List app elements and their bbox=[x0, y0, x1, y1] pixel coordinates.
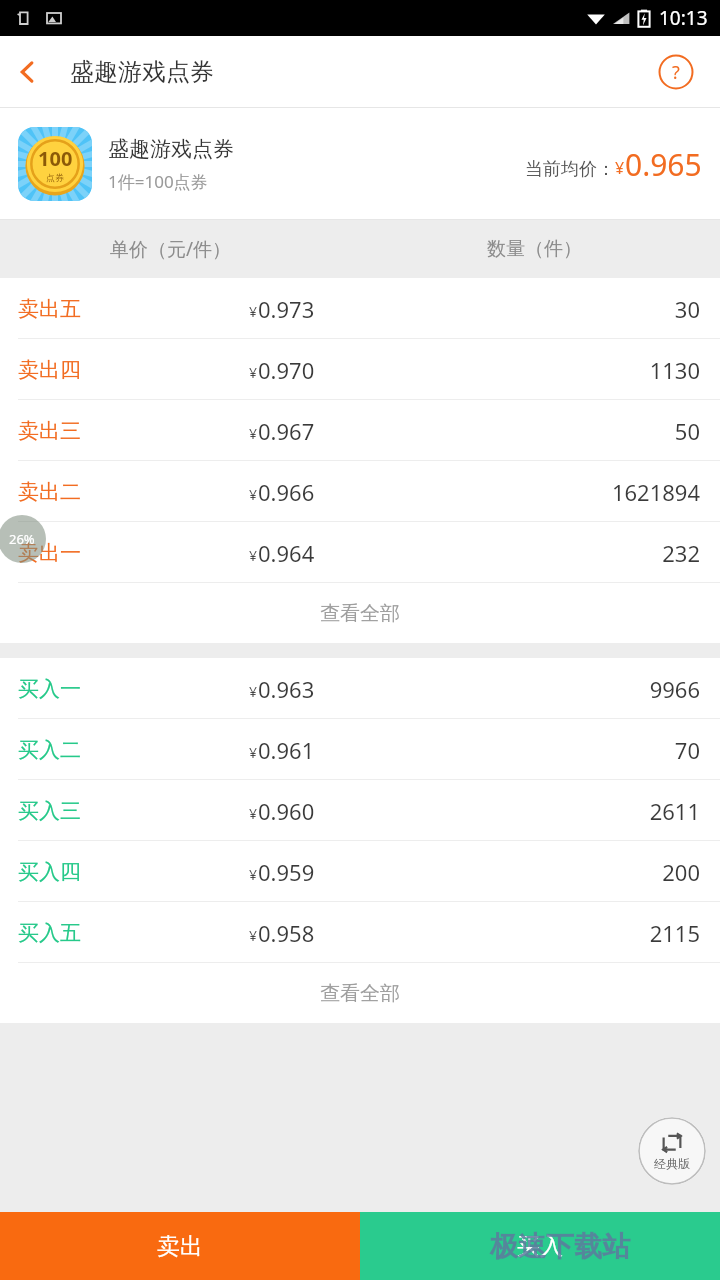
staticText: 200 bbox=[662, 857, 700, 887]
staticText: 经典版 bbox=[654, 1156, 690, 1171]
staticText: 盛趣游戏点券 bbox=[70, 57, 214, 87]
staticText: ¥ bbox=[249, 546, 258, 565]
button[interactable]: 卖出五 bbox=[0, 278, 720, 339]
staticText: 0.967 bbox=[258, 416, 315, 446]
staticText: 70 bbox=[674, 735, 700, 765]
staticText: 买入四 bbox=[18, 859, 81, 885]
staticText: 10:13 bbox=[659, 5, 708, 31]
staticText: 1621894 bbox=[611, 477, 700, 507]
staticText: 盛趣游戏点券 bbox=[108, 136, 234, 162]
button[interactable]: 卖出一 bbox=[0, 522, 720, 583]
staticText: 卖出 bbox=[157, 1232, 203, 1261]
button[interactable]: 买入三 bbox=[0, 780, 720, 841]
staticText: 查看全部 bbox=[320, 601, 400, 626]
staticText: 26% bbox=[9, 530, 35, 548]
staticText: 卖出二 bbox=[18, 479, 81, 505]
staticText: ? bbox=[672, 60, 680, 85]
staticText: 买入一 bbox=[18, 676, 81, 702]
staticText: ¥ bbox=[249, 804, 258, 823]
staticText: 极速下载站 bbox=[490, 1229, 630, 1264]
staticText: ¥ bbox=[249, 424, 258, 443]
staticText: 0.966 bbox=[258, 477, 315, 507]
staticText: 0.961 bbox=[258, 735, 315, 765]
staticText: 数量（件） bbox=[487, 237, 582, 261]
staticText: ¥ bbox=[249, 302, 258, 321]
staticText: 查看全部 bbox=[320, 981, 400, 1006]
staticText: ¥ bbox=[249, 926, 258, 945]
staticText: 卖出一 bbox=[18, 540, 81, 566]
button[interactable]: 卖出 bbox=[0, 1212, 360, 1280]
staticText: 9966 bbox=[649, 674, 700, 704]
staticText: 2115 bbox=[649, 918, 700, 948]
staticText: 0.960 bbox=[258, 796, 315, 826]
staticText: 卖出三 bbox=[18, 418, 81, 444]
staticText: 0.963 bbox=[258, 674, 315, 704]
staticText: ¥ bbox=[249, 485, 258, 504]
staticText: 50 bbox=[674, 416, 700, 446]
button[interactable]: 帮助 bbox=[654, 50, 698, 94]
staticText: 0.958 bbox=[258, 918, 315, 948]
button[interactable]: 买入一 bbox=[0, 658, 720, 719]
button[interactable]: 100 bbox=[0, 108, 720, 220]
staticText: 232 bbox=[662, 538, 700, 568]
staticText: 卖出五 bbox=[18, 296, 81, 322]
staticText: 单价（元/件） bbox=[110, 236, 232, 262]
button[interactable]: 卖出三 bbox=[0, 400, 720, 461]
staticText: 100 bbox=[38, 145, 73, 172]
staticText: 1130 bbox=[649, 355, 700, 385]
staticText: 0.965 bbox=[625, 144, 702, 185]
staticText: 卖出四 bbox=[18, 357, 81, 383]
button[interactable]: 卖出四 bbox=[0, 339, 720, 400]
button[interactable]: 切换经典版 bbox=[638, 1117, 706, 1185]
staticText: ¥ bbox=[249, 363, 258, 382]
button[interactable]: 返回 bbox=[0, 44, 56, 100]
button[interactable]: 卖出二 bbox=[0, 461, 720, 522]
staticText: ¥ bbox=[249, 743, 258, 762]
button[interactable]: 买入二 bbox=[0, 719, 720, 780]
staticText: 0.970 bbox=[258, 355, 315, 385]
button[interactable]: 查看全部 bbox=[0, 963, 720, 1023]
staticText: 买入五 bbox=[18, 920, 81, 946]
staticText: 点券 bbox=[46, 172, 64, 183]
staticText: 当前均价： bbox=[525, 158, 615, 181]
staticText: 买入三 bbox=[18, 798, 81, 824]
staticText: 买入二 bbox=[18, 737, 81, 763]
button[interactable]: 买入 bbox=[360, 1212, 720, 1280]
staticText: ¥ bbox=[249, 865, 258, 884]
staticText: 买入 bbox=[517, 1232, 563, 1261]
staticText: 0.964 bbox=[258, 538, 315, 568]
staticText: ¥ bbox=[249, 682, 258, 701]
staticText: 0.973 bbox=[258, 294, 315, 324]
staticText: 1件=100点券 bbox=[108, 170, 208, 193]
button[interactable]: 买入五 bbox=[0, 902, 720, 963]
button[interactable]: 买入四 bbox=[0, 841, 720, 902]
button[interactable]: 查看全部 bbox=[0, 583, 720, 643]
staticText: 0.959 bbox=[258, 857, 315, 887]
staticText: ¥ bbox=[615, 157, 625, 179]
staticText: 2611 bbox=[649, 796, 700, 826]
staticText: 30 bbox=[674, 294, 700, 324]
